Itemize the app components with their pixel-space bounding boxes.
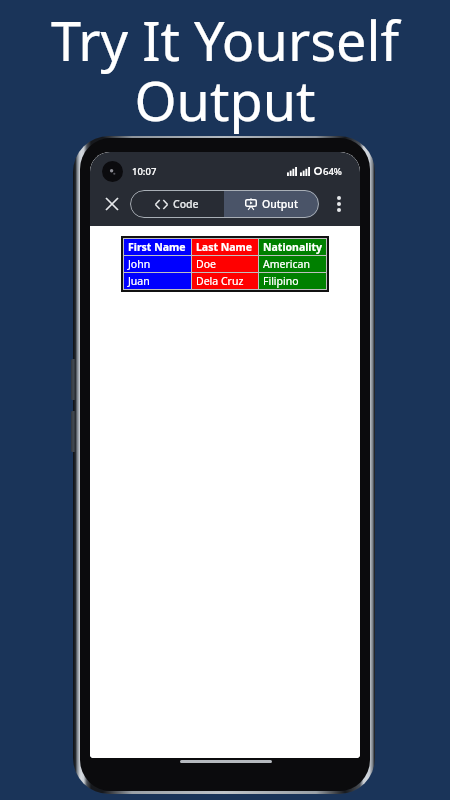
staticText: American xyxy=(263,257,310,271)
button[interactable]: Close xyxy=(100,192,124,216)
staticText: 10:07 xyxy=(132,165,157,178)
staticText: Code xyxy=(173,197,199,211)
staticText: Output xyxy=(262,197,298,211)
staticText: Dela Cruz xyxy=(196,274,244,288)
staticText: First Name xyxy=(128,240,186,254)
staticText: Last Name xyxy=(196,240,253,254)
staticText: Filipino xyxy=(263,274,299,288)
staticText: Nationality xyxy=(263,240,323,254)
button[interactable]: Code xyxy=(130,190,224,218)
button[interactable]: Output xyxy=(224,190,319,218)
staticText: Try It Yourself Output xyxy=(0,3,450,137)
staticText: Doe xyxy=(196,257,216,271)
staticText: 64% xyxy=(323,165,342,178)
button[interactable]: More options xyxy=(328,193,350,215)
staticText: John xyxy=(128,257,151,271)
staticText: Juan xyxy=(128,274,150,288)
